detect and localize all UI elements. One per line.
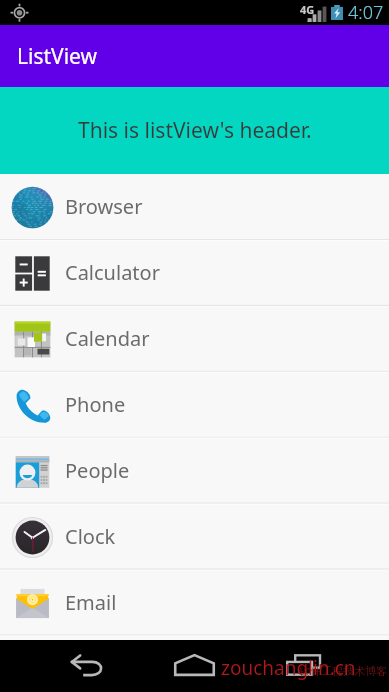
button[interactable]: Email <box>0 570 389 636</box>
button[interactable]: Recent apps <box>277 641 330 689</box>
staticText: zouchanglin.cn <box>221 655 356 681</box>
button[interactable]: Phone <box>0 372 389 438</box>
staticText: ListView <box>17 42 98 71</box>
staticText: Email <box>65 589 117 616</box>
staticText: 软件工程技术博客 <box>299 664 387 678</box>
button[interactable]: Clock <box>0 504 389 570</box>
staticText: This is listView's header. <box>78 116 312 145</box>
staticText: 4G <box>300 2 315 17</box>
button[interactable]: This is listView's header. <box>0 87 389 174</box>
staticText: Calculator <box>65 259 160 286</box>
button[interactable]: ListView <box>0 25 389 87</box>
button[interactable]: People <box>0 438 389 504</box>
button[interactable]: Back <box>60 642 113 690</box>
staticText: People <box>65 457 130 484</box>
button[interactable]: Calendar <box>0 306 389 372</box>
staticText: Browser <box>65 193 143 220</box>
staticText: Clock <box>65 523 116 550</box>
staticText: 4:07 <box>348 0 384 25</box>
button[interactable]: Home <box>168 641 221 689</box>
staticText: Calendar <box>65 325 150 352</box>
staticText: Phone <box>65 391 126 418</box>
button[interactable]: Calculator <box>0 240 389 306</box>
button[interactable]: Browser <box>0 174 389 240</box>
